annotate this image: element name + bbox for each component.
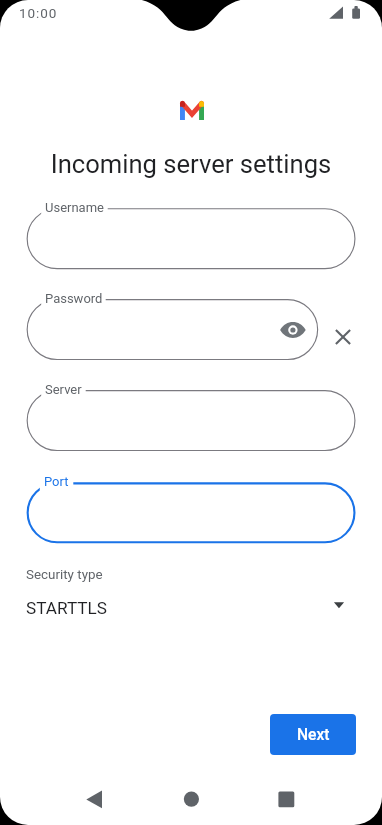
button[interactable]: Recent apps (270, 783, 302, 815)
button[interactable]: Back (78, 783, 110, 815)
staticText: STARTTLS (26, 598, 108, 618)
button[interactable] (27, 208, 356, 269)
button[interactable] (27, 299, 319, 360)
staticText: Incoming server settings (0, 149, 382, 179)
staticText: 10:00 (19, 5, 58, 21)
staticText: Server (45, 382, 82, 397)
staticText: Next (297, 726, 330, 744)
staticText: Password (45, 291, 103, 306)
staticText: Username (45, 200, 104, 215)
button[interactable] (27, 390, 356, 451)
button[interactable]: Home (175, 783, 207, 815)
button[interactable] (27, 482, 356, 543)
button[interactable]: Next (270, 714, 356, 755)
button[interactable]: Clear (331, 325, 355, 349)
button[interactable]: Show password (279, 316, 307, 344)
button[interactable]: Security type (0, 560, 382, 628)
staticText: Security type (26, 567, 103, 583)
staticText: Port (44, 474, 69, 489)
